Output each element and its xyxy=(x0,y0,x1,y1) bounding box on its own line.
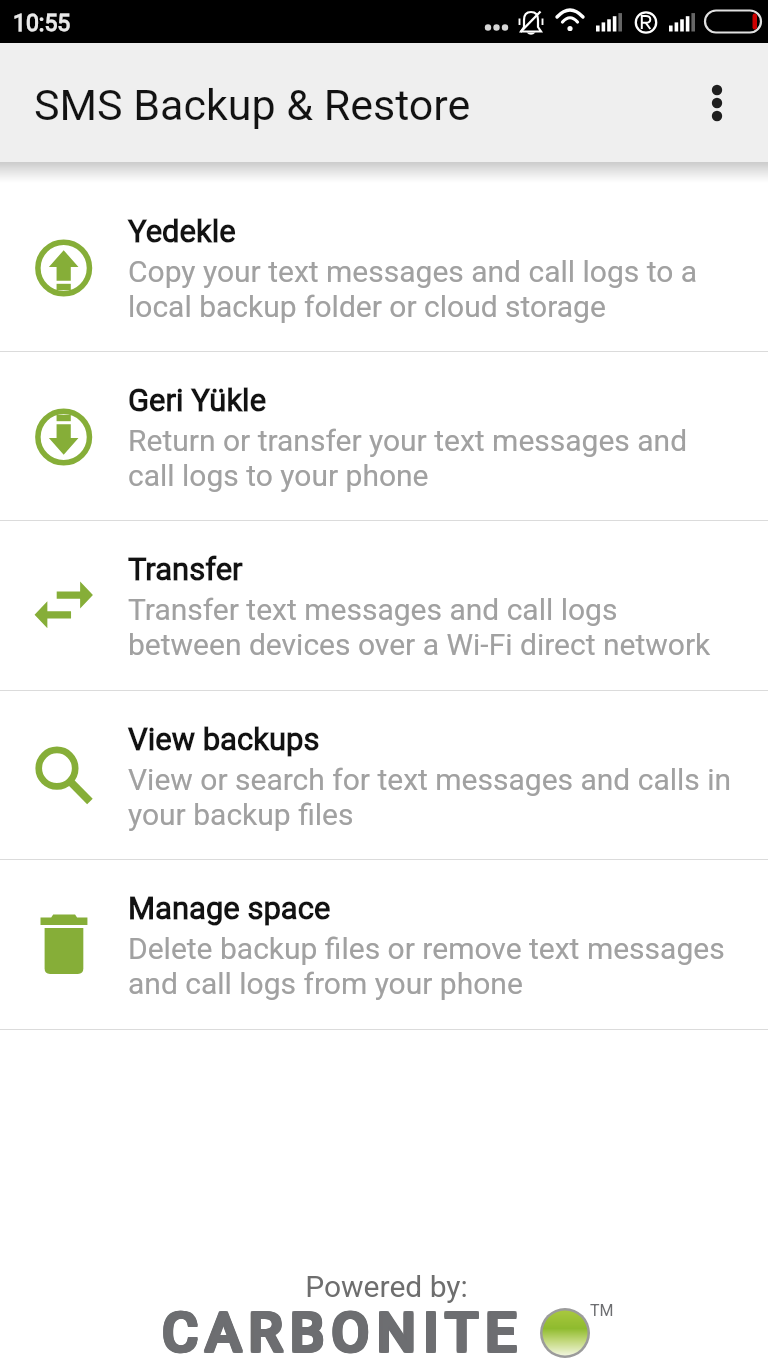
staticText: CARBONITE xyxy=(163,1301,525,1364)
button[interactable]: Manage space xyxy=(0,860,768,1029)
button[interactable]: Yedekle xyxy=(0,183,768,351)
staticText: CARBONITE xyxy=(161,1302,523,1365)
staticText: CARBONITE xyxy=(161,1301,523,1364)
staticText: Manage space xyxy=(128,890,331,926)
staticText: CARBONITE xyxy=(164,1300,526,1363)
staticText: Copy your text messages and call logs to… xyxy=(128,254,698,324)
staticText: CARBONITE xyxy=(162,1300,524,1363)
staticText: 10:55 xyxy=(13,10,71,37)
staticText: CARBONITE xyxy=(164,1302,526,1365)
staticText: SMS Backup & Restore xyxy=(34,80,471,130)
staticText: CARBONITE xyxy=(163,1302,525,1365)
staticText: Delete backup files or remove text messa… xyxy=(128,931,725,1001)
staticText: View backups xyxy=(128,721,320,757)
staticText: CARBONITE xyxy=(162,1302,524,1365)
staticText: Geri Yükle xyxy=(128,382,267,418)
staticText: View or search for text messages and cal… xyxy=(128,762,732,832)
staticText: TM xyxy=(590,1301,614,1320)
staticText: Powered by: xyxy=(305,1269,468,1304)
staticText: CARBONITE xyxy=(163,1300,525,1363)
staticText: Transfer xyxy=(128,551,243,587)
button[interactable]: Geri Yükle xyxy=(0,352,768,520)
staticText: Transfer text messages and call logs bet… xyxy=(128,592,711,662)
button[interactable]: View backups xyxy=(0,691,768,859)
staticText: Return or transfer your text messages an… xyxy=(128,423,688,493)
staticText: Yedekle xyxy=(128,213,236,249)
staticText: CARBONITE xyxy=(161,1300,523,1363)
staticText: CARBONITE xyxy=(164,1301,526,1364)
button[interactable]: More options xyxy=(675,61,759,145)
staticText: CARBONITE xyxy=(162,1301,524,1364)
button[interactable]: Transfer xyxy=(0,521,768,690)
